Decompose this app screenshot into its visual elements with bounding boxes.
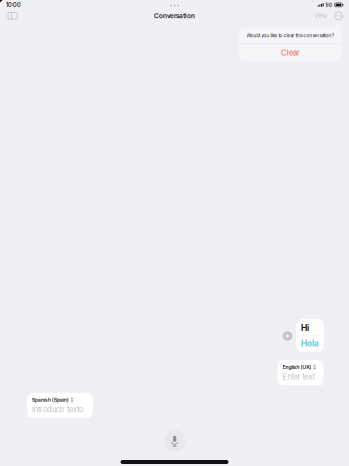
staticText: Clear [281, 48, 300, 58]
button[interactable]: Spanish (Spain) [27, 393, 93, 418]
button[interactable]: View [310, 8, 331, 23]
staticText: 5G [325, 2, 332, 8]
staticText: Spanish (Spain) [32, 397, 69, 403]
staticText: View [314, 12, 327, 19]
button[interactable]: Clear [239, 44, 342, 62]
staticText: Hi [301, 322, 309, 333]
button[interactable]: More options [331, 8, 346, 23]
staticText: English (UK) [282, 364, 311, 370]
button[interactable]: English (UK) [277, 360, 323, 385]
staticText: 10:00 [6, 1, 21, 8]
button[interactable]: Hi [296, 319, 324, 352]
button[interactable]: Start voice input [161, 427, 189, 455]
button[interactable]: Show sidebar [4, 8, 21, 23]
staticText: Would you like to clear this conversatio… [246, 32, 334, 38]
staticText: Enter text [282, 372, 314, 381]
staticText: Introducir texto [32, 404, 83, 414]
button[interactable]: Play translation [283, 331, 292, 341]
staticText: Hola [301, 338, 319, 348]
staticText: Conversation [154, 12, 195, 20]
